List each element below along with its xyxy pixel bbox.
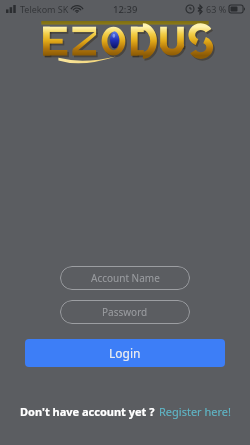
staticText: Account Name [91, 271, 160, 285]
staticText: Don't have account yet ? [20, 404, 155, 419]
button[interactable]: Account Name [60, 266, 190, 290]
staticText: Telekom SK [20, 3, 69, 15]
button[interactable]: Login [25, 339, 225, 367]
staticText: 63 % [206, 3, 227, 15]
staticText: Password [102, 305, 148, 319]
staticText: 12:39 [113, 3, 138, 16]
button[interactable]: Register here! [155, 401, 231, 422]
button[interactable]: Password [60, 300, 190, 324]
staticText: Register here! [159, 404, 231, 419]
staticText: Login [109, 345, 141, 361]
